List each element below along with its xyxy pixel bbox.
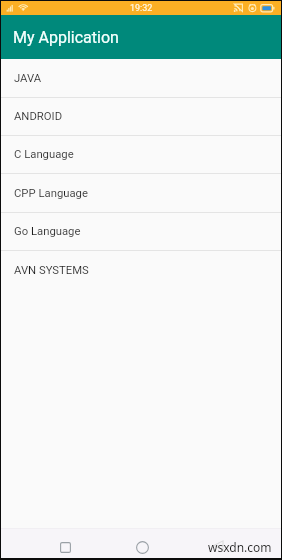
button[interactable]: C Language xyxy=(1,136,281,173)
button[interactable]: ANDROID xyxy=(1,98,281,135)
staticText: AVN SYSTEMS xyxy=(14,264,89,277)
button[interactable]: Go Language xyxy=(1,213,281,250)
button[interactable]: Home xyxy=(125,536,159,558)
staticText: JAVA xyxy=(14,72,42,85)
staticText: C Language xyxy=(14,148,74,161)
button[interactable]: CPP Language xyxy=(1,174,281,212)
button[interactable]: JAVA xyxy=(1,59,281,97)
button[interactable]: AVN SYSTEMS xyxy=(1,251,281,289)
staticText: ANDROID xyxy=(14,110,63,123)
staticText: wsxdn.com xyxy=(208,539,272,555)
button[interactable]: Recents xyxy=(48,536,82,558)
staticText: My Application xyxy=(13,28,119,47)
button[interactable]: Back xyxy=(201,534,235,556)
staticText: CPP Language xyxy=(14,187,88,200)
staticText: 19:32 xyxy=(130,3,153,14)
button[interactable]: My Application xyxy=(1,15,281,59)
staticText: Go Language xyxy=(14,225,81,238)
